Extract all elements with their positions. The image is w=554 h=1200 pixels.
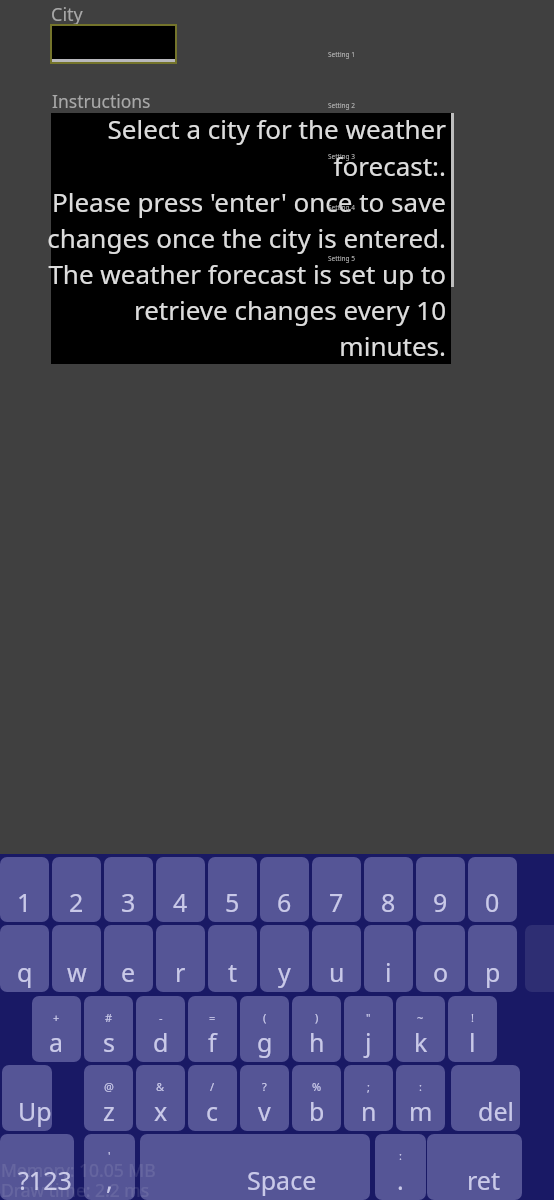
button[interactable]: del	[451, 1065, 520, 1131]
staticText: ?123	[18, 1163, 72, 1197]
staticText: 6	[277, 885, 292, 919]
staticText: ,	[106, 1163, 113, 1197]
button[interactable]: .	[375, 1134, 426, 1200]
staticText: h	[309, 1025, 325, 1059]
staticText: z	[103, 1094, 115, 1128]
button[interactable]: Setting 4	[307, 201, 377, 214]
button[interactable]: i	[364, 925, 413, 992]
button[interactable]: l	[448, 996, 497, 1062]
button[interactable]: y	[260, 925, 309, 992]
button[interactable]: Setting 3	[307, 150, 377, 163]
button[interactable]: 3	[104, 857, 153, 922]
staticText: 7	[329, 885, 344, 919]
staticText: j	[365, 1025, 372, 1059]
staticText: Instructions	[52, 89, 151, 113]
staticText: m	[409, 1094, 433, 1128]
button[interactable]: ret	[427, 1134, 522, 1200]
button[interactable]: Up	[2, 1065, 52, 1131]
staticText: 5	[225, 885, 240, 919]
staticText: /	[210, 1079, 215, 1094]
staticText: &	[156, 1079, 165, 1094]
staticText: v	[258, 1094, 271, 1128]
button[interactable]: 6	[260, 857, 309, 922]
staticText: Space	[247, 1163, 317, 1197]
staticText: '	[108, 1148, 111, 1163]
button[interactable]: u	[312, 925, 361, 992]
button[interactable]: a	[32, 996, 81, 1062]
staticText: t	[228, 955, 238, 989]
button[interactable]: b	[292, 1065, 341, 1131]
staticText: 9	[433, 885, 448, 919]
button[interactable]: 4	[156, 857, 205, 922]
button[interactable]: m	[396, 1065, 445, 1131]
staticText: w	[67, 955, 87, 989]
staticText: g	[257, 1025, 273, 1059]
staticText: c	[206, 1094, 219, 1128]
staticText: Draw time: 2.2 ms	[1, 1178, 150, 1200]
staticText: 4	[173, 885, 188, 919]
button[interactable]: City input	[52, 26, 175, 62]
button[interactable]: s	[84, 996, 133, 1062]
staticText: s	[103, 1025, 115, 1059]
button[interactable]: x	[136, 1065, 185, 1131]
staticText: q	[17, 955, 33, 989]
button[interactable]: Setting 1	[307, 48, 377, 61]
button[interactable]: Space	[140, 1134, 370, 1200]
staticText: Memory: 10.05 MB	[1, 1158, 156, 1182]
button[interactable]: k	[396, 996, 445, 1062]
button[interactable]: c	[188, 1065, 237, 1131]
staticText: 8	[381, 885, 396, 919]
staticText: Select a city for the weather forecast:.…	[46, 111, 446, 362]
button[interactable]: o	[416, 925, 465, 992]
button[interactable]: p	[468, 925, 517, 992]
staticText: o	[433, 955, 449, 989]
staticText: ret	[467, 1163, 500, 1197]
button[interactable]: j	[344, 996, 393, 1062]
button[interactable]: 0	[468, 857, 517, 922]
staticText: Up	[18, 1094, 52, 1128]
button[interactable]: g	[240, 996, 289, 1062]
button[interactable]: z	[84, 1065, 133, 1131]
button[interactable]: n	[344, 1065, 393, 1131]
staticText: .	[397, 1163, 404, 1197]
staticText: r	[175, 955, 186, 989]
button[interactable]: 1	[0, 857, 49, 922]
staticText: 3	[121, 885, 136, 919]
staticText: City	[51, 2, 83, 27]
staticText: b	[309, 1094, 325, 1128]
staticText: l	[469, 1025, 476, 1059]
button[interactable]: 2	[52, 857, 101, 922]
button[interactable]: r	[156, 925, 205, 992]
staticText: -	[159, 1010, 163, 1025]
button[interactable]: h	[292, 996, 341, 1062]
staticText: =	[209, 1010, 216, 1025]
button[interactable]: 5	[208, 857, 257, 922]
staticText: e	[121, 955, 136, 989]
staticText: Setting 2	[328, 101, 356, 110]
button[interactable]: f	[188, 996, 237, 1062]
button[interactable]: ?123	[0, 1134, 74, 1200]
button[interactable]: Setting 5	[307, 252, 377, 265]
staticText: i	[385, 955, 392, 989]
staticText: del	[478, 1094, 514, 1128]
staticText: Setting 4	[328, 203, 356, 212]
staticText: :	[399, 1148, 402, 1163]
button[interactable]: d	[136, 996, 185, 1062]
button[interactable]: e	[104, 925, 153, 992]
button[interactable]: 9	[416, 857, 465, 922]
staticText: a	[49, 1025, 64, 1059]
button[interactable]: q	[0, 925, 49, 992]
button[interactable]: Setting 2	[307, 99, 377, 112]
staticText: Setting 3	[328, 152, 356, 161]
staticText: Setting 1	[328, 50, 356, 59]
staticText: @	[104, 1079, 114, 1094]
button[interactable]: t	[208, 925, 257, 992]
button[interactable]: ,	[84, 1134, 135, 1200]
staticText: p	[485, 955, 501, 989]
button[interactable]: v	[240, 1065, 289, 1131]
button[interactable]: w	[52, 925, 101, 992]
button[interactable]: 8	[364, 857, 413, 922]
staticText: +	[53, 1010, 60, 1025]
button[interactable]: 7	[312, 857, 361, 922]
